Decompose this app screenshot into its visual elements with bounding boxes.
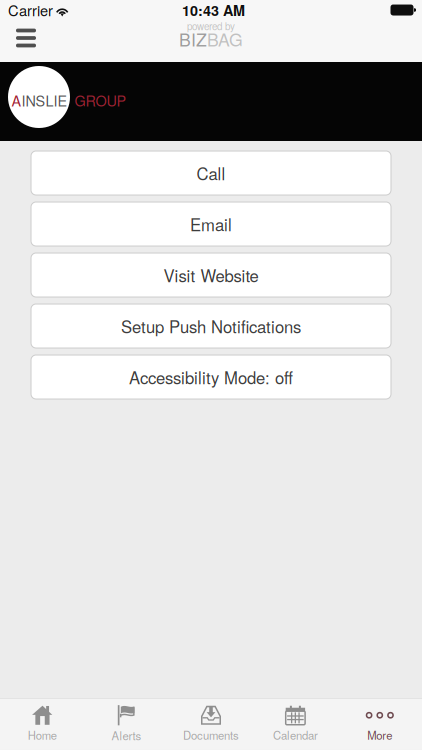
staticText: BAG	[207, 26, 243, 52]
staticText: Calendar	[273, 727, 318, 743]
button[interactable]: Visit Website	[31, 253, 391, 297]
staticText: Accessibility Mode: off	[129, 365, 293, 389]
staticText: Alerts	[112, 727, 142, 743]
staticText: powered by	[187, 19, 235, 33]
staticText: Visit Website	[163, 263, 258, 287]
button[interactable]: Email	[31, 202, 391, 246]
staticText: BIZ	[179, 26, 207, 52]
staticText: Call	[196, 161, 225, 185]
staticText: Setup Push Notifications	[121, 314, 301, 338]
button[interactable]: More	[338, 702, 422, 747]
button[interactable]: Call	[31, 151, 391, 195]
staticText: Home	[28, 727, 57, 743]
button[interactable]: Home	[0, 702, 84, 747]
button[interactable]: Alerts	[84, 702, 169, 747]
button[interactable]: Documents	[169, 702, 253, 747]
button[interactable]: Accessibility Mode: off	[31, 355, 391, 399]
staticText: GROUP	[74, 90, 126, 111]
staticText: Documents	[183, 727, 239, 743]
staticText: Carrier	[8, 0, 53, 20]
staticText: Email	[190, 212, 232, 236]
button[interactable]: Menu	[4, 20, 48, 56]
staticText: More	[367, 727, 392, 743]
button[interactable]: Calendar	[253, 702, 338, 747]
button[interactable]: Setup Push Notifications	[31, 304, 391, 348]
staticText: INSLIE	[21, 90, 67, 111]
staticText: A	[11, 90, 21, 111]
staticText: 10:43 AM	[182, 0, 245, 20]
